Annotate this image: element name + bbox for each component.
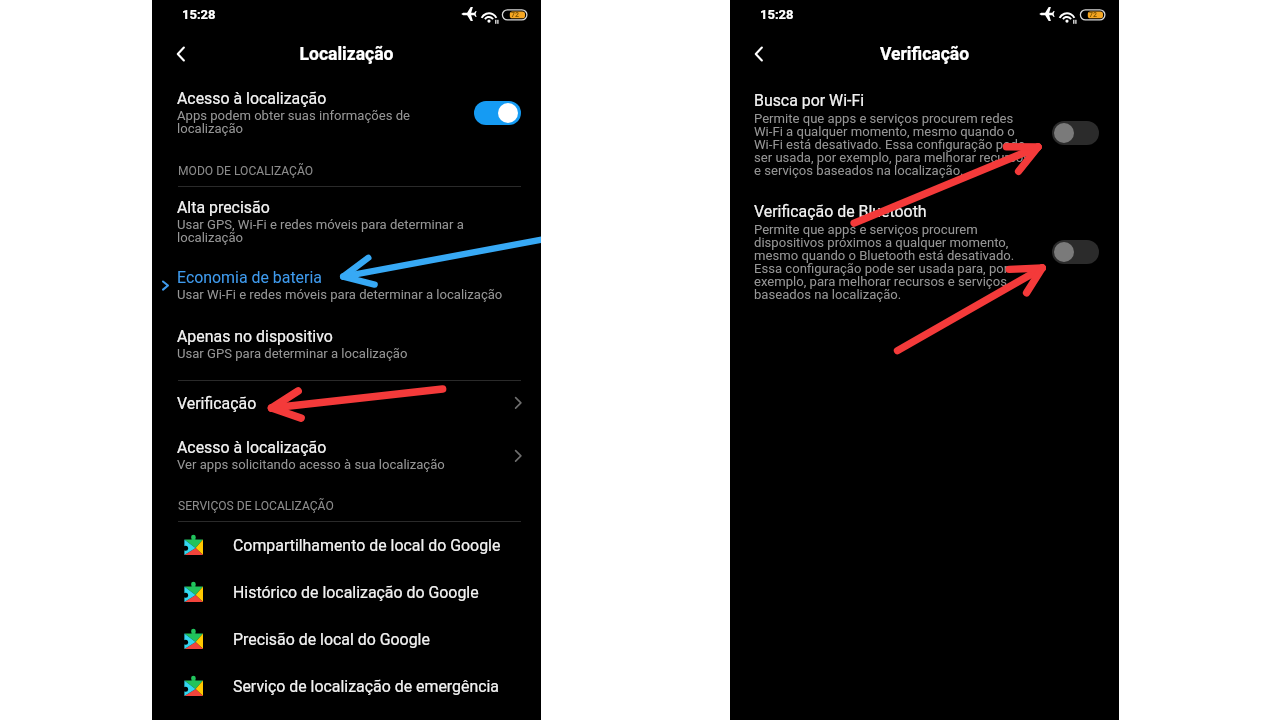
staticText: Permite que apps e serviços procurem dis… — [754, 222, 1030, 302]
staticText: Ver apps solicitando acesso à sua locali… — [177, 457, 445, 472]
staticText: Verificação de Bluetooth — [754, 202, 927, 221]
button[interactable]: Toggle off — [1052, 240, 1099, 264]
button[interactable]: Alta precisão — [177, 198, 509, 246]
button[interactable]: Acesso à localização — [177, 89, 439, 145]
staticText: Serviço de localização de emergência — [233, 677, 500, 696]
staticText: 15:28 — [182, 7, 216, 22]
staticText: Busca por Wi-Fi — [754, 91, 865, 110]
staticText: Usar Wi-Fi e redes móveis para determina… — [177, 287, 503, 302]
button[interactable]: Precisão de local do Google — [152, 621, 541, 659]
staticText: Localização — [152, 44, 541, 65]
staticText: Economia de bateria — [177, 268, 322, 287]
staticText: Alta precisão — [177, 198, 270, 217]
staticText: Usar GPS, Wi-Fi e redes móveis para dete… — [177, 217, 509, 245]
staticText: 15:28 — [760, 7, 794, 22]
staticText: 72 — [1089, 11, 1098, 19]
staticText: Histórico de localização do Google — [233, 583, 479, 602]
staticText: 72 — [511, 11, 520, 19]
button[interactable]: Verificação de Bluetooth — [754, 202, 1030, 310]
staticText: MODO DE LOCALIZAÇÃO — [178, 164, 314, 178]
staticText: Compartilhamento de local do Google — [233, 536, 501, 555]
button[interactable]: Toggle off — [1052, 121, 1099, 145]
button[interactable]: Verificação — [152, 392, 541, 420]
staticText: Precisão de local do Google — [233, 630, 430, 649]
button[interactable]: Serviço de localização de emergência — [152, 668, 541, 706]
staticText: Verificação — [177, 394, 257, 413]
button[interactable]: Histórico de localização do Google — [152, 574, 541, 612]
button[interactable]: Acesso à localização — [177, 438, 477, 482]
button[interactable]: Apenas no dispositivo — [177, 327, 509, 369]
staticText: Usar GPS para determinar a localização — [177, 346, 408, 361]
button[interactable]: Back — [743, 38, 775, 70]
staticText: Acesso à localização — [177, 89, 327, 108]
button[interactable]: Compartilhamento de local do Google — [152, 527, 541, 565]
staticText: Verificação — [730, 44, 1119, 65]
button[interactable]: Economia de bateria — [177, 268, 509, 310]
button[interactable]: Busca por Wi-Fi — [754, 91, 1030, 183]
staticText: Apps podem obter suas informações de loc… — [177, 108, 439, 136]
staticText: Acesso à localização — [177, 438, 327, 457]
staticText: Permite que apps e serviços procurem red… — [754, 111, 1030, 178]
button[interactable]: Back — [165, 38, 197, 70]
staticText: Apenas no dispositivo — [177, 327, 333, 346]
button[interactable]: Location access on — [474, 101, 521, 125]
staticText: SERVIÇOS DE LOCALIZAÇÃO — [178, 499, 334, 513]
